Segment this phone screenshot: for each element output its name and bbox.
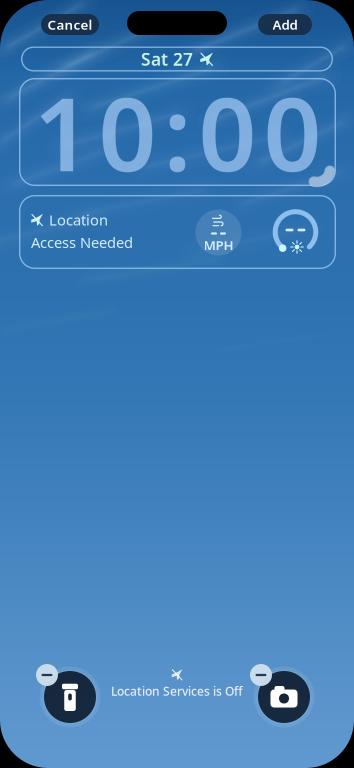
staticText: Location [49, 210, 108, 229]
staticText: 10:00 [33, 65, 321, 199]
button[interactable]: Flashlight [38, 665, 102, 729]
button[interactable]: Camera [252, 665, 316, 729]
button[interactable]: Cancel [41, 14, 99, 35]
button[interactable]: Location [19, 195, 336, 269]
staticText: MPH [203, 236, 233, 254]
button[interactable]: Add [258, 14, 312, 35]
staticText: Access Needed [31, 232, 133, 252]
staticText: Sat 27 [141, 47, 193, 70]
button[interactable]: Sat 27 [21, 46, 333, 71]
staticText: Location Services is Off [111, 683, 243, 699]
button[interactable]: 10:00 [19, 78, 336, 186]
staticText: Add [272, 16, 297, 33]
staticText: Cancel [47, 16, 92, 33]
